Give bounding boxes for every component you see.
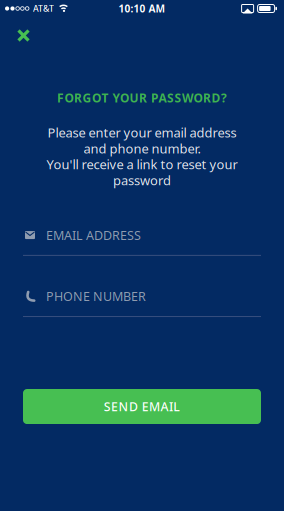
button[interactable]: SEND EMAIL xyxy=(23,389,261,424)
staticText: FORGOT YOUR PASSWORD? xyxy=(57,90,227,106)
staticText: You'll receive a link to reset your xyxy=(46,156,237,173)
staticText: 10:10 AM xyxy=(118,2,165,15)
staticText: password xyxy=(113,172,171,189)
button[interactable]: PHONE NUMBER xyxy=(23,288,261,317)
staticText: Please enter your email address xyxy=(47,124,236,141)
staticText: PHONE NUMBER xyxy=(46,288,146,304)
staticText: SEND EMAIL xyxy=(104,398,180,415)
button[interactable]: Close xyxy=(17,29,30,42)
staticText: EMAIL ADDRESS xyxy=(46,227,141,243)
button[interactable]: EMAIL ADDRESS xyxy=(23,227,261,256)
staticText: and phone number. xyxy=(83,140,200,157)
staticText: AT&T xyxy=(33,3,54,14)
